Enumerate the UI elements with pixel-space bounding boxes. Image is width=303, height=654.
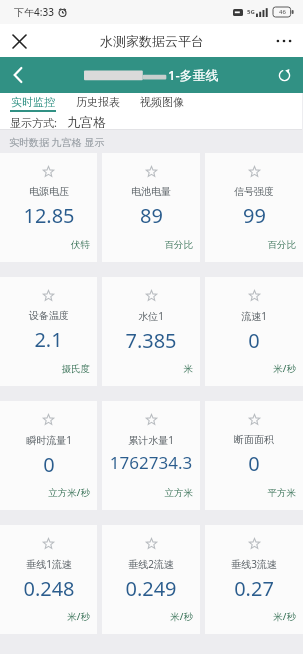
button[interactable]: Favorite: [205, 525, 303, 634]
staticText: 水测家数据云平台: [100, 33, 204, 49]
staticText: 米/秒: [212, 610, 296, 623]
button[interactable]: Favorite: [0, 277, 97, 386]
staticText: 1762734.33: [109, 451, 193, 474]
staticText: 信号强度: [234, 185, 274, 198]
button[interactable]: Favorite: [0, 401, 97, 510]
other: Favorite: [43, 538, 54, 549]
button[interactable]: Favorite: [102, 525, 200, 634]
button[interactable]: Favorite: [102, 153, 200, 262]
button[interactable]: Close: [4, 26, 34, 56]
staticText: 垂线3流速: [231, 557, 277, 571]
button[interactable]: Favorite: [102, 401, 200, 510]
staticText: 7.385: [125, 327, 177, 354]
staticText: 0: [248, 450, 260, 477]
other: Favorite: [249, 166, 260, 177]
staticText: 99: [243, 202, 266, 229]
staticText: 2.1: [34, 326, 63, 353]
staticText: 伏特: [7, 239, 90, 251]
staticText: 0.249: [125, 575, 177, 602]
button[interactable]: Back: [2, 59, 34, 91]
other: Favorite: [249, 290, 260, 301]
staticText: 累计水量1: [128, 433, 174, 447]
staticText: 摄氏度: [7, 363, 90, 375]
button[interactable]: 实时监控: [8, 95, 58, 112]
staticText: 九宫格: [67, 114, 106, 130]
staticText: 百分比: [109, 239, 193, 251]
staticText: 实时数据 九宫格 显示: [9, 135, 105, 149]
button[interactable]: Favorite: [102, 277, 200, 386]
staticText: 设备温度: [29, 309, 69, 322]
other: Favorite: [146, 290, 157, 301]
button[interactable]: Favorite: [0, 525, 97, 634]
other: Favorite: [146, 414, 157, 425]
button[interactable]: Favorite: [205, 401, 303, 510]
staticText: 历史报表: [76, 95, 120, 109]
other: Favorite: [146, 538, 157, 549]
staticText: 水位1: [138, 309, 164, 323]
staticText: 下午4:33: [14, 5, 54, 19]
button[interactable]: Favorite: [205, 277, 303, 386]
staticText: 0: [248, 327, 260, 354]
staticText: 12.85: [23, 202, 75, 229]
staticText: 立方米/秒: [7, 486, 90, 499]
other: Favorite: [43, 166, 54, 177]
staticText: 百分比: [212, 239, 296, 251]
staticText: 垂线2流速: [128, 557, 174, 571]
staticText: 立方米: [109, 487, 193, 499]
staticText: 视频图像: [140, 95, 184, 109]
button[interactable]: Favorite: [0, 153, 97, 262]
button[interactable]: Favorite: [205, 153, 303, 262]
staticText: 流速1: [241, 309, 267, 323]
staticText: 平方米: [212, 487, 296, 499]
staticText: 垂线1流速: [26, 557, 72, 571]
other: Favorite: [249, 414, 260, 425]
staticText: 米/秒: [109, 610, 193, 623]
staticText: 米: [109, 363, 193, 375]
staticText: 0.248: [23, 575, 75, 602]
button[interactable]: 视频图像: [138, 95, 186, 112]
other: Favorite: [146, 166, 157, 177]
staticText: 1-多垂线: [168, 66, 219, 84]
button[interactable]: 历史报表: [74, 95, 122, 112]
staticText: 电池电量: [131, 185, 171, 198]
staticText: 5G: [247, 8, 255, 16]
other: Favorite: [43, 290, 54, 301]
other: Favorite: [249, 538, 260, 549]
staticText: 0.27: [234, 575, 274, 602]
staticText: 46: [279, 8, 286, 16]
staticText: 实时监控: [11, 95, 55, 109]
staticText: 断面面积: [234, 433, 274, 446]
staticText: 0: [43, 451, 55, 478]
button[interactable]: More options: [269, 26, 299, 56]
staticText: 米/秒: [212, 362, 296, 375]
other: Favorite: [43, 414, 54, 425]
staticText: 米/秒: [7, 610, 90, 623]
button[interactable]: Refresh: [269, 60, 299, 90]
staticText: 显示方式:: [10, 115, 57, 130]
staticText: 89: [140, 202, 163, 229]
staticText: 瞬时流量1: [26, 433, 72, 447]
staticText: 电源电压: [29, 185, 69, 198]
